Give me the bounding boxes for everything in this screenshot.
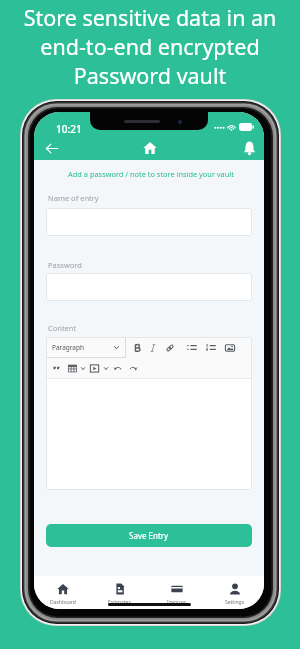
staticText: Store sensitive data in an end-to-end en… [0, 3, 300, 90]
button[interactable]: Quote [49, 362, 65, 374]
button[interactable]: Home [139, 137, 161, 159]
button[interactable]: Back [41, 137, 63, 159]
staticText: Estimates [108, 599, 131, 606]
staticText: 10:21 [56, 122, 82, 136]
button[interactable]: Video options [100, 364, 112, 373]
staticText: Password [48, 260, 82, 270]
staticText: Content [48, 323, 77, 333]
button[interactable]: Bold [130, 341, 145, 355]
button[interactable] [46, 208, 252, 236]
staticText: Save Entry [129, 530, 169, 541]
button[interactable]: Bullet list [183, 341, 201, 354]
button[interactable]: Undo [110, 362, 126, 375]
button[interactable]: Table [64, 361, 81, 376]
staticText: Name of entry [48, 193, 99, 203]
staticText: Invoices [167, 599, 187, 606]
button[interactable]: Notifications [238, 137, 260, 159]
button[interactable]: Link [162, 341, 178, 355]
staticText: Dashboard [50, 599, 76, 606]
button[interactable]: Settings [206, 576, 264, 609]
button[interactable]: Video [86, 361, 103, 376]
staticText: Add a password / note to store inside yo… [36, 169, 264, 179]
button[interactable]: Italic [146, 341, 160, 355]
button[interactable]: Image [221, 341, 239, 355]
button[interactable]: Estimates [91, 576, 148, 609]
button[interactable]: Save Entry [46, 524, 252, 547]
button[interactable]: Invoices [148, 576, 206, 609]
button[interactable]: Table options [77, 364, 89, 373]
button[interactable]: Numbered list [202, 341, 220, 354]
button[interactable]: Paragraph [46, 337, 126, 358]
button[interactable]: Dashboard [34, 576, 91, 609]
button[interactable]: Redo [125, 362, 141, 375]
staticText: Settings [225, 599, 245, 606]
button[interactable] [46, 273, 252, 301]
staticText: Paragraph [52, 343, 84, 352]
